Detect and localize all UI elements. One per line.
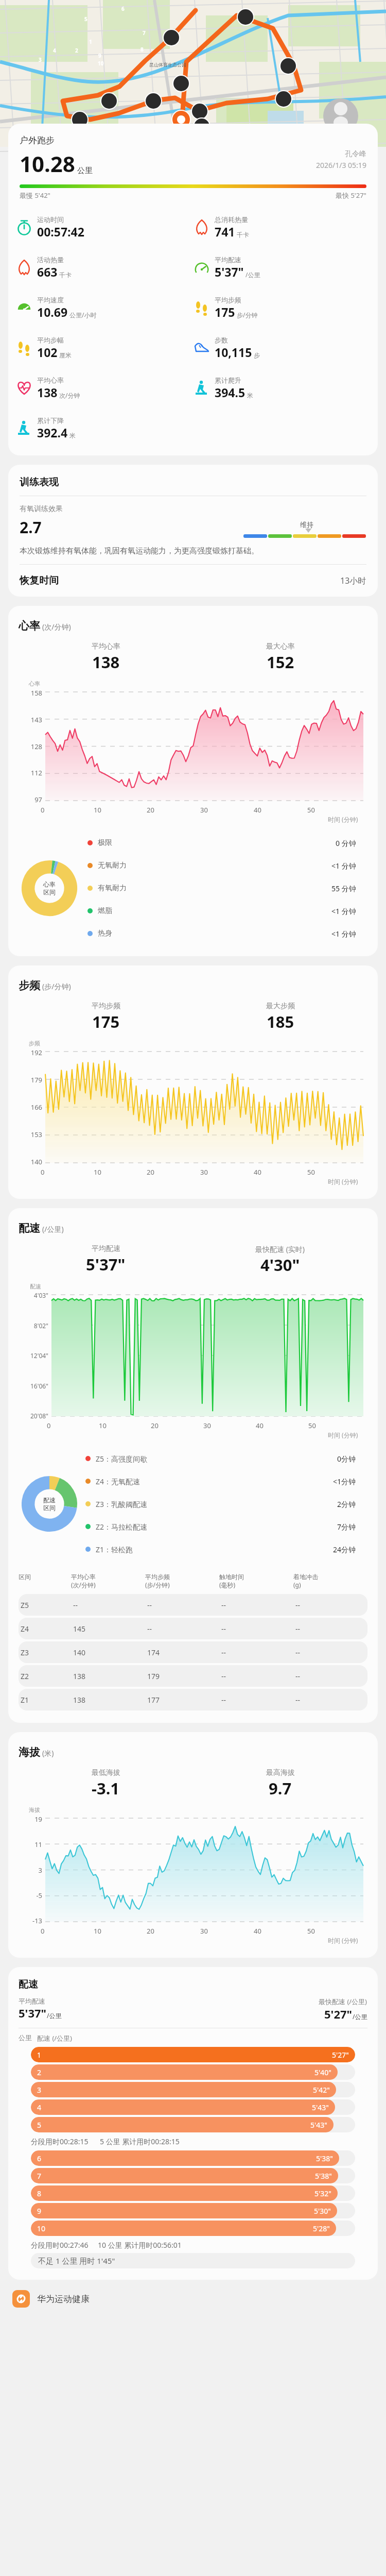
button[interactable]: 4 [31,2099,355,2115]
staticText: 最快配速 (/公里) [319,1997,367,2006]
staticText: -3.1 [92,1777,120,1799]
staticText: 8 [141,46,144,53]
button[interactable]: Z4 [19,1618,367,1639]
staticText: 20 [147,805,154,815]
button[interactable]: 9 [31,2203,355,2218]
staticText: 152 [267,651,294,673]
staticText: (/公里) [42,1224,64,1234]
staticText: 步/分钟 [237,311,258,319]
button[interactable]: 华为运动健康 [12,2290,386,2308]
button[interactable]: Z1：轻松跑 [85,1538,367,1561]
button[interactable]: 10 [31,2221,355,2236]
button[interactable]: 恢复时间 [20,565,366,597]
staticText: 138 [92,651,120,673]
staticText: 10 [99,1421,107,1430]
staticText: 华为运动健康 [37,2294,90,2304]
button[interactable]: Z4：无氧配速 [85,1470,367,1493]
staticText: -13 [19,1916,42,1925]
staticText: 112 [19,768,42,777]
button[interactable]: 有氧耐力 [87,877,367,900]
staticText: Z3：乳酸阈配速 [96,1499,148,1509]
staticText: 公里/小时 [69,311,97,319]
button[interactable]: Z1 [19,1689,367,1710]
staticText: 区间 [43,1504,56,1512]
staticText: -- [221,1624,226,1634]
staticText: 175 [215,304,235,320]
staticText: 总消耗热量 [215,215,248,224]
button[interactable]: Z5：高强度间歇 [85,1447,367,1470]
staticText: 千卡 [237,231,249,239]
staticText: 步频 [29,1040,40,1047]
staticText: 2.7 [20,517,42,538]
button[interactable]: 燃脂 [87,900,367,922]
staticText: 5'40" [314,2067,331,2077]
staticText: 174 [147,1648,160,1657]
staticText: 30 [200,1926,208,1936]
staticText: 昆山体育生态公园 [149,62,186,67]
staticText: 10 公里 累计用时00:56:01 [98,2240,182,2250]
staticText: <1 分钟 [331,861,356,871]
staticText: 145 [73,1624,86,1634]
button[interactable]: 2 [31,2064,355,2080]
button[interactable]: 1 [31,2047,355,2062]
staticText: 有氧训练效果 [20,504,63,514]
staticText: 4'30" [260,1254,300,1276]
button[interactable]: 热身 [87,922,367,945]
staticText: 着地冲击 [293,1573,318,1581]
staticText: <1 分钟 [331,929,356,939]
staticText: 166 [19,1103,42,1112]
button[interactable]: 3 [31,2082,355,2097]
staticText: 5'37" [86,1253,126,1275]
staticText: 128 [19,742,42,751]
staticText: 0 [41,1926,45,1936]
staticText: 11 [19,1840,42,1849]
staticText: 累计爬升 [215,376,241,384]
staticText: 102 [37,344,58,360]
staticText: 40 [254,1926,261,1936]
button[interactable]: 7 [31,2168,355,2183]
staticText: 9 [98,52,101,59]
button[interactable]: Z3：乳酸阈配速 [85,1493,367,1515]
button[interactable]: 8 [31,2185,355,2201]
button[interactable]: Z2 [19,1665,367,1687]
staticText: 公里 [19,2033,32,2042]
staticText: 5 [84,15,87,23]
staticText: 40 [254,805,261,815]
staticText: 1 [37,2050,42,2060]
staticText: 5 公里 累计用时00:28:15 [100,2137,180,2146]
staticText: 10.28 [20,149,75,178]
button[interactable]: Z2：马拉松配速 [85,1515,367,1538]
button[interactable]: 6 [31,2150,355,2166]
staticText: 极限 [98,838,112,848]
staticText: 140 [19,1157,42,1166]
staticText: 2 [37,2067,42,2077]
button[interactable]: Z5 [19,1594,367,1616]
button[interactable]: 无氧耐力 [87,854,367,877]
staticText: 1 [89,38,92,45]
staticText: 7分钟 [337,1522,356,1532]
staticText: 5'37" [19,2005,47,2021]
staticText: 平均步频 [145,1573,170,1581]
staticText: 4'03" [19,1291,48,1299]
staticText: 平均配速 [215,256,241,264]
staticText: 千卡 [59,271,72,279]
staticText: 平均步频 [215,296,241,304]
button[interactable]: 极限 [87,832,367,854]
staticText: 心率 [29,680,40,687]
staticText: 户外跑步 [20,135,55,146]
button[interactable]: Z3 [19,1641,367,1663]
staticText: 10 [94,1167,101,1177]
staticText: 5'37" [215,264,244,280]
staticText: -- [295,1600,301,1610]
staticText: 97 [19,795,42,804]
staticText: 配速 (/公里) [37,2033,73,2043]
staticText: 143 [19,715,42,724]
staticText: 185 [267,1011,294,1032]
button[interactable]: 5 [31,2117,355,2132]
staticText: -- [295,1671,301,1681]
staticText: 392.4 [37,425,68,440]
staticText: 8'02" [19,1321,48,1330]
staticText: 步频 [19,979,40,992]
staticText: 10 [94,1926,101,1936]
staticText: (次/分钟) [42,622,71,632]
